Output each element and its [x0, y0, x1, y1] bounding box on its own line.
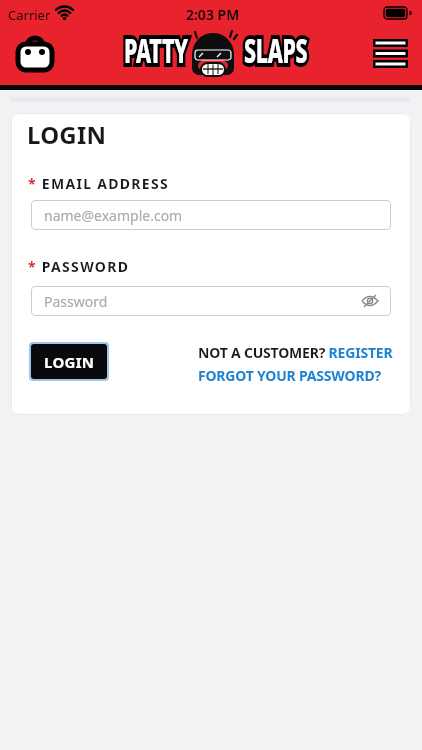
- staticText: 2:03 PM: [186, 5, 240, 24]
- staticText: SLAPS: [244, 27, 308, 73]
- staticText: name@example.com: [44, 206, 183, 225]
- staticText: SLAPS: [244, 27, 308, 73]
- button[interactable]: [14, 32, 56, 72]
- button[interactable]: NOT A CUSTOMER? REGISTER: [198, 343, 393, 362]
- staticText: * EMAIL ADDRESS: [28, 174, 170, 193]
- staticText: LOGIN: [27, 118, 107, 151]
- staticText: Carrier: [8, 6, 51, 24]
- staticText: PATTY: [124, 27, 188, 73]
- staticText: * PASSWORD: [28, 257, 130, 276]
- button[interactable]: Password: [31, 286, 391, 316]
- staticText: Password: [44, 292, 108, 311]
- button[interactable]: [371, 38, 409, 70]
- button[interactable]: LOGIN: [29, 342, 109, 381]
- staticText: PATTY: [124, 27, 188, 73]
- button[interactable]: FORGOT YOUR PASSWORD?: [198, 366, 381, 385]
- button[interactable]: name@example.com: [31, 200, 391, 230]
- staticText: LOGIN: [44, 352, 95, 372]
